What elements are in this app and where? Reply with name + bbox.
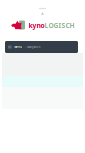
staticText: LOGISCH bbox=[44, 21, 74, 30]
staticText: Menu bbox=[14, 45, 22, 49]
button[interactable]: Menu bbox=[5, 41, 78, 53]
staticText: - Navigation bbox=[25, 45, 41, 49]
staticText: kyno bbox=[28, 21, 44, 30]
